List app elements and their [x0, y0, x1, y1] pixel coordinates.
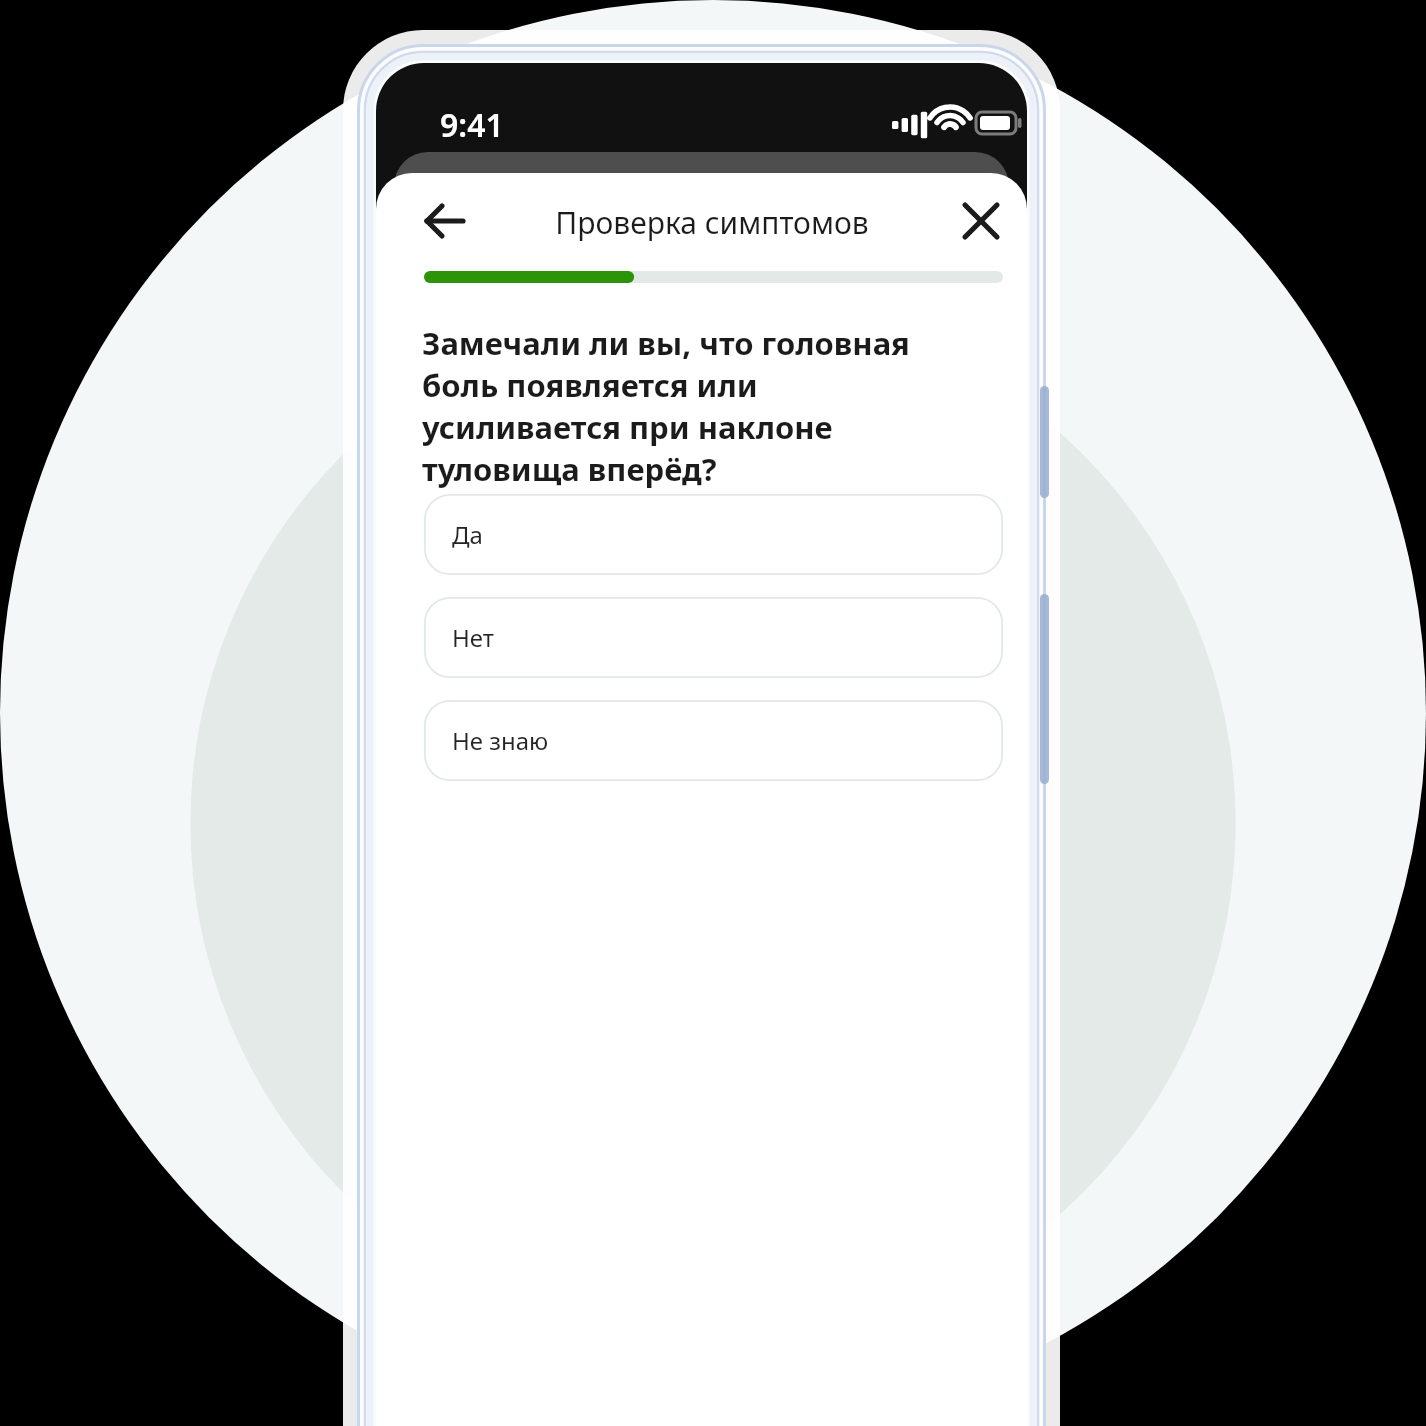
staticText: Проверка симптомов — [555, 202, 869, 243]
staticText: Нет — [452, 621, 494, 654]
staticText: 9:41 — [440, 103, 504, 147]
button[interactable]: Не знаю — [424, 700, 1003, 781]
button[interactable]: Да — [424, 494, 1003, 575]
button[interactable]: Нет — [424, 597, 1003, 678]
staticText: Да — [452, 518, 483, 551]
button[interactable]: Закрыть — [949, 189, 1013, 253]
staticText: Замечали ли вы, что головная боль появля… — [422, 322, 952, 490]
staticText: Не знаю — [452, 724, 549, 757]
button[interactable]: Назад — [412, 189, 476, 253]
